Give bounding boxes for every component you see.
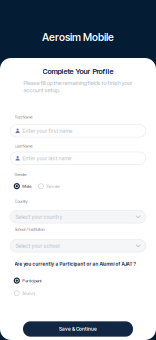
- button[interactable]: Select your school: [10, 239, 146, 252]
- staticText: Aerosim Mobile: [42, 31, 114, 44]
- button[interactable]: Enter your first name: [10, 124, 146, 137]
- staticText: Last Name: [14, 144, 32, 149]
- button[interactable]: Male: [14, 183, 31, 189]
- staticText: Alumni: [22, 291, 35, 296]
- staticText: Enter your first name: [22, 127, 72, 134]
- staticText: Are you currently a Participant or an Al…: [14, 261, 135, 267]
- button[interactable]: Save & Continue: [23, 321, 133, 337]
- staticText: Please fill up the remaining fields to f…: [23, 79, 132, 94]
- button[interactable]: Enter your last name: [10, 152, 146, 165]
- staticText: First Name: [14, 115, 32, 120]
- staticText: Country: [14, 199, 27, 204]
- staticText: Gender: [14, 172, 26, 177]
- staticText: Select your country: [15, 213, 62, 220]
- button[interactable]: Female: [38, 183, 59, 189]
- staticText: Female: [46, 184, 59, 189]
- staticText: Select your school: [15, 242, 59, 249]
- button[interactable]: Alumni: [14, 290, 35, 296]
- button[interactable]: Participant: [14, 277, 41, 284]
- staticText: Complete Your Profile: [42, 67, 113, 76]
- staticText: Participant: [22, 278, 41, 283]
- button[interactable]: Select your country: [10, 210, 146, 223]
- staticText: Male: [22, 184, 31, 189]
- staticText: School / Institution: [14, 227, 44, 232]
- staticText: Save & Continue: [59, 326, 97, 332]
- staticText: Enter your last name: [22, 155, 71, 161]
